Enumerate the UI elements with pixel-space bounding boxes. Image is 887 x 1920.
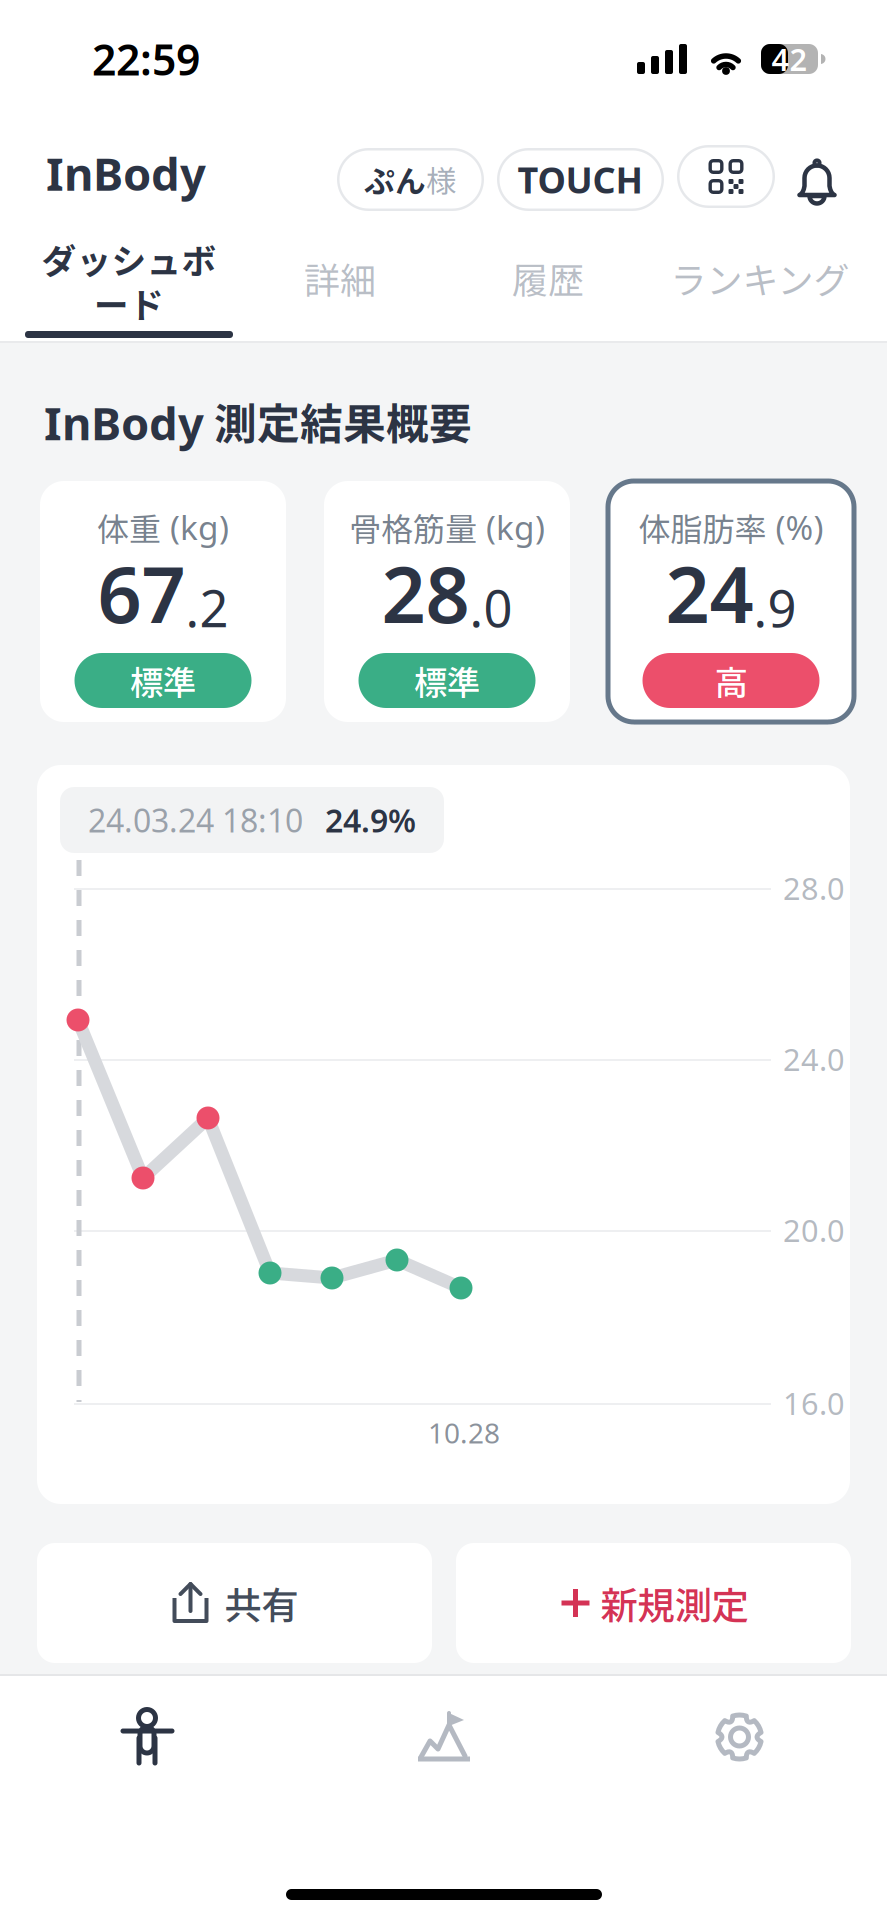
staticText: 標準 (414, 656, 480, 705)
button[interactable]: ダッシュボ (25, 228, 233, 342)
staticText: 22:59 (92, 31, 200, 87)
staticText: 様 (426, 157, 457, 202)
staticText: (kg) (477, 505, 545, 549)
staticText: 新規測定 (600, 1576, 748, 1630)
button[interactable]: Goals (296, 1676, 592, 1798)
button[interactable]: ぷん (337, 148, 484, 211)
staticText: .0 (469, 574, 512, 641)
staticText: (kg) (161, 505, 229, 549)
staticText: 24.03.24 18:10 (88, 799, 303, 841)
button[interactable]: 共有 (37, 1543, 432, 1663)
staticText: 標準 (130, 656, 196, 705)
staticText: 24 (665, 542, 753, 644)
staticText: 24.0 (783, 1039, 845, 1079)
button[interactable]: 骨格筋量 (324, 481, 570, 722)
button[interactable]: 履歴 (478, 243, 618, 313)
staticText: 高 (714, 656, 747, 705)
staticText: 測定結果概要 (204, 390, 472, 452)
staticText: 骨格筋量 (349, 504, 477, 550)
staticText: ぷん (364, 157, 426, 202)
staticText: (%) (766, 505, 823, 549)
button[interactable]: ランキング (645, 243, 875, 313)
button[interactable]: Scan QR code (677, 145, 775, 208)
staticText: InBody (44, 393, 204, 453)
staticText: .2 (185, 574, 228, 641)
staticText: 10.28 (428, 1414, 500, 1451)
staticText: 67 (97, 542, 185, 644)
staticText: 体脂肪率 (638, 504, 766, 550)
button[interactable]: 詳細 (270, 243, 410, 313)
staticText: 履歴 (512, 252, 584, 304)
staticText: 20.0 (783, 1210, 845, 1250)
staticText: ード (94, 278, 164, 328)
staticText: 共有 (224, 1576, 298, 1630)
button[interactable]: Body composition (0, 1676, 296, 1798)
staticText: 28.0 (783, 868, 845, 908)
staticText: InBody (46, 143, 206, 203)
button[interactable]: Notifications (789, 149, 845, 213)
staticText: 体重 (97, 504, 161, 550)
staticText: 16.0 (783, 1383, 845, 1423)
staticText: 42 (771, 39, 807, 79)
button[interactable]: 体重 (40, 481, 286, 722)
button[interactable]: 体脂肪率 (608, 481, 854, 722)
staticText: .9 (753, 574, 796, 641)
staticText: 24.9% (325, 799, 416, 841)
staticText: ダッシュボ (41, 234, 216, 284)
button[interactable]: Settings (592, 1676, 887, 1798)
staticText: 28 (381, 542, 469, 644)
button[interactable]: TOUCH (497, 148, 664, 211)
staticText: TOUCH (517, 156, 643, 203)
staticText: 詳細 (304, 252, 376, 304)
button[interactable]: 新規測定 (456, 1543, 851, 1663)
staticText: ランキング (670, 252, 849, 304)
